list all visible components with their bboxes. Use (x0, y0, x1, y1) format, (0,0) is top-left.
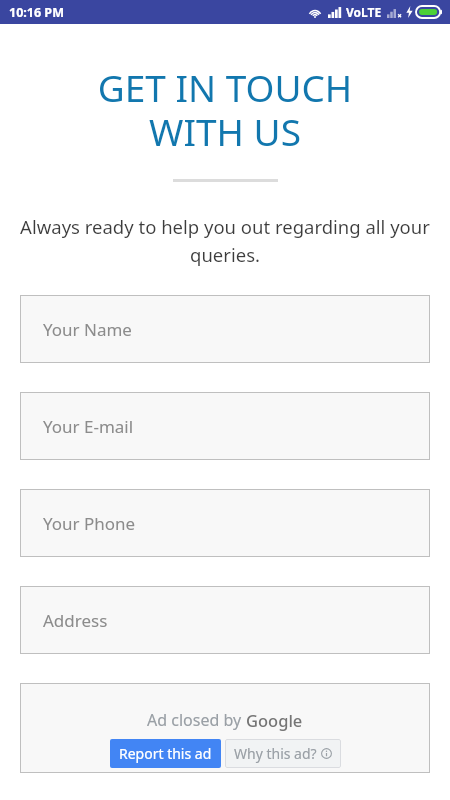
button[interactable]: Your E-mail (20, 392, 430, 460)
button[interactable]: Report this ad (110, 739, 221, 768)
staticText: Your Name (43, 318, 132, 341)
staticText: Ad closed by (147, 709, 246, 731)
button[interactable]: Why this ad? (225, 739, 341, 768)
staticText: Address (43, 609, 108, 632)
button[interactable]: Your Phone (20, 489, 430, 557)
staticText: VoLTE (346, 4, 382, 20)
staticText: 10:16 PM (9, 4, 64, 21)
staticText: Google (246, 709, 303, 731)
other: Ad info (321, 748, 332, 759)
button[interactable]: Address (20, 586, 430, 654)
staticText: GET IN TOUCH WITH US (0, 62, 450, 157)
button[interactable]: Your Name (20, 295, 430, 363)
staticText: Why this ad? (234, 744, 317, 763)
staticText: Always ready to help you out regarding a… (16, 214, 434, 267)
staticText: Your E-mail (43, 415, 134, 438)
staticText: Your Phone (43, 512, 136, 535)
staticText: Report this ad (119, 744, 212, 763)
